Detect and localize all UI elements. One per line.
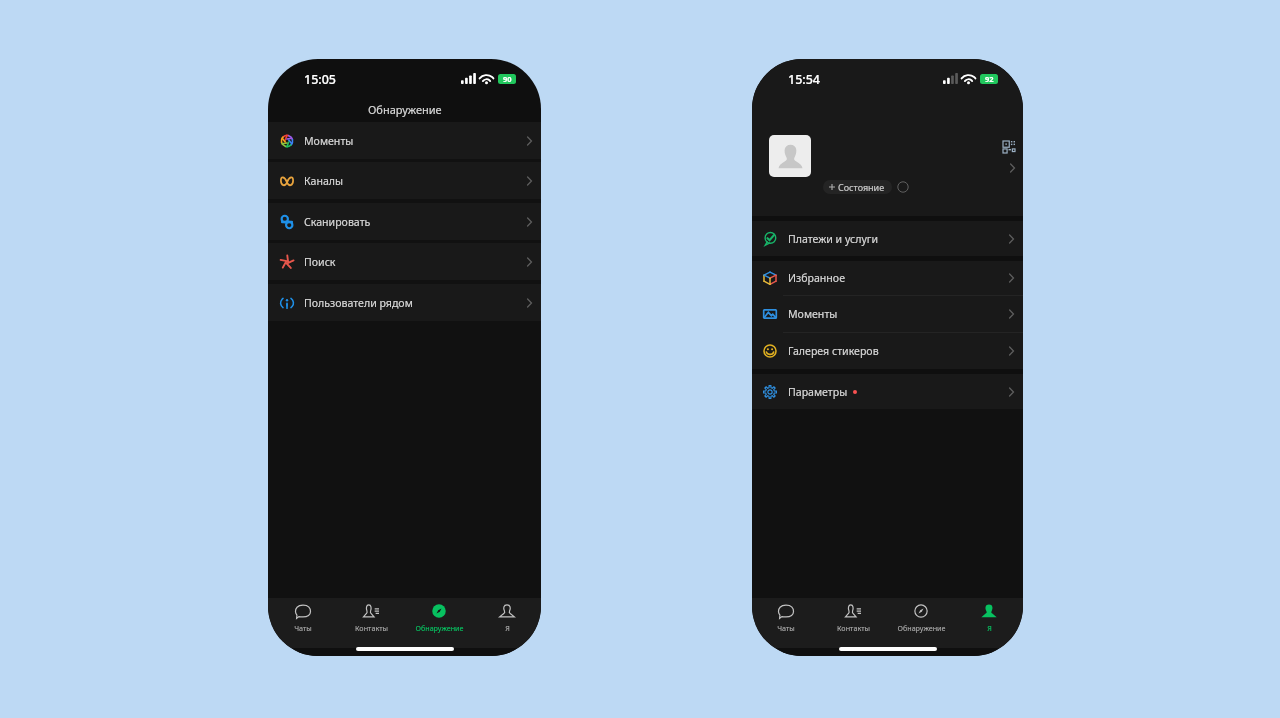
staticText: Пользователи рядом bbox=[304, 296, 413, 310]
button[interactable]: Profile avatar bbox=[769, 135, 811, 177]
button[interactable]: Чаты bbox=[752, 598, 819, 648]
staticText: Моменты bbox=[304, 134, 354, 148]
button[interactable]: Я bbox=[955, 598, 1023, 648]
button[interactable]: Чаты bbox=[268, 598, 337, 648]
staticText: Я bbox=[505, 623, 510, 633]
button[interactable]: Status ring bbox=[897, 181, 909, 193]
staticText: Чаты bbox=[294, 623, 312, 633]
staticText: Платежи и услуги bbox=[788, 232, 879, 246]
button[interactable]: Сканировать bbox=[268, 203, 541, 240]
staticText: 92 bbox=[985, 74, 994, 84]
staticText: Обнаружение bbox=[415, 623, 464, 633]
staticText: Галерея стикеров bbox=[788, 344, 879, 358]
staticText: Параметры bbox=[788, 385, 848, 399]
button[interactable]: Обнаружение bbox=[405, 598, 473, 648]
staticText: Избранное bbox=[788, 271, 845, 285]
button[interactable]: Платежи и услуги bbox=[752, 221, 1023, 256]
staticText: Состояние bbox=[838, 181, 885, 193]
button[interactable]: Контакты bbox=[819, 598, 887, 648]
button[interactable]: Обнаружение bbox=[887, 598, 955, 648]
button[interactable]: QR code bbox=[1003, 141, 1015, 153]
staticText: Контакты bbox=[837, 623, 870, 633]
button[interactable]: Пользователи рядом bbox=[268, 284, 541, 321]
staticText: Моменты bbox=[788, 307, 838, 321]
staticText: Я bbox=[987, 623, 992, 633]
button[interactable]: Состояние bbox=[823, 180, 892, 194]
button[interactable]: Каналы bbox=[268, 162, 541, 199]
button[interactable]: Я bbox=[473, 598, 541, 648]
button[interactable]: Параметры bbox=[752, 374, 1023, 409]
button[interactable]: Контакты bbox=[337, 598, 405, 648]
staticText: Сканировать bbox=[304, 215, 371, 229]
button[interactable]: Избранное bbox=[752, 261, 1023, 295]
staticText: 90 bbox=[503, 74, 512, 84]
staticText: Чаты bbox=[777, 623, 795, 633]
staticText: 15:05 bbox=[304, 71, 337, 88]
button[interactable]: Моменты bbox=[268, 122, 541, 159]
button[interactable]: Галерея стикеров bbox=[752, 333, 1023, 369]
button[interactable]: Моменты bbox=[752, 296, 1023, 332]
staticText: Обнаружение bbox=[368, 102, 442, 117]
staticText: Обнаружение bbox=[897, 623, 946, 633]
staticText: 15:54 bbox=[788, 71, 821, 88]
staticText: Контакты bbox=[355, 623, 388, 633]
staticText: Каналы bbox=[304, 174, 344, 188]
staticText: Поиск bbox=[304, 255, 336, 269]
button[interactable]: Поиск bbox=[268, 243, 541, 280]
